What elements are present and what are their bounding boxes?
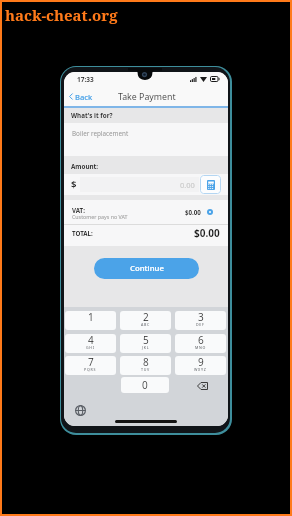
button[interactable]: 4 [65,334,116,353]
staticText: 17:33 [77,75,94,84]
staticText: Customer pays no VAT [72,213,128,220]
staticText: MNO [195,345,207,350]
button[interactable]: Continue [94,258,199,279]
staticText: 3 [198,311,204,324]
staticText: 7 [88,356,94,369]
staticText: 1 [88,311,94,324]
button[interactable]: 5 [120,334,171,353]
button[interactable]: Backspace [177,377,228,394]
button[interactable]: 0.00 [80,177,199,192]
button[interactable]: 8 [120,356,171,375]
staticText: GHI [86,345,95,350]
staticText: DEF [196,322,205,327]
staticText: WXYZ [194,367,207,372]
staticText: hack-cheat.org [5,5,118,25]
staticText: TOTAL: [72,229,93,237]
button[interactable]: Back [69,86,93,106]
button[interactable]: VAT: [64,200,228,224]
staticText: 9 [198,356,204,369]
staticText: Continue [130,263,164,274]
staticText: Take Payment [118,91,176,103]
staticText: What's it for? [71,111,113,120]
staticText: 8 [143,356,149,369]
button[interactable]: Change keyboard [75,405,86,416]
staticText: 6 [198,334,204,347]
button[interactable]: 1 [65,311,116,330]
staticText: $0.00 [185,208,201,216]
button[interactable]: 7 [65,356,116,375]
button[interactable]: 6 [175,334,226,353]
staticText: Boiler replacement [72,129,129,138]
staticText: $ [71,178,77,191]
button[interactable]: 3 [175,311,226,330]
button[interactable]: 0 [121,377,169,393]
button[interactable]: VAT information [207,209,213,215]
staticText: VAT: [72,206,85,214]
staticText: 5 [143,334,149,347]
button[interactable]: Boiler replacement [64,123,228,156]
staticText: Back [75,92,93,102]
staticText: PQRS [84,367,97,372]
staticText: Amount: [71,162,99,171]
staticText: $0.00 [194,226,220,240]
staticText: TUV [141,367,150,372]
staticText: 2 [143,311,149,324]
button[interactable]: 9 [175,356,226,375]
button[interactable]: Calculator [200,175,221,194]
staticText: JKL [142,345,150,350]
staticText: ABC [141,322,151,327]
button[interactable]: 2 [120,311,171,330]
staticText: 4 [88,334,94,347]
staticText: 0.00 [180,180,195,190]
staticText: 0 [142,378,148,392]
